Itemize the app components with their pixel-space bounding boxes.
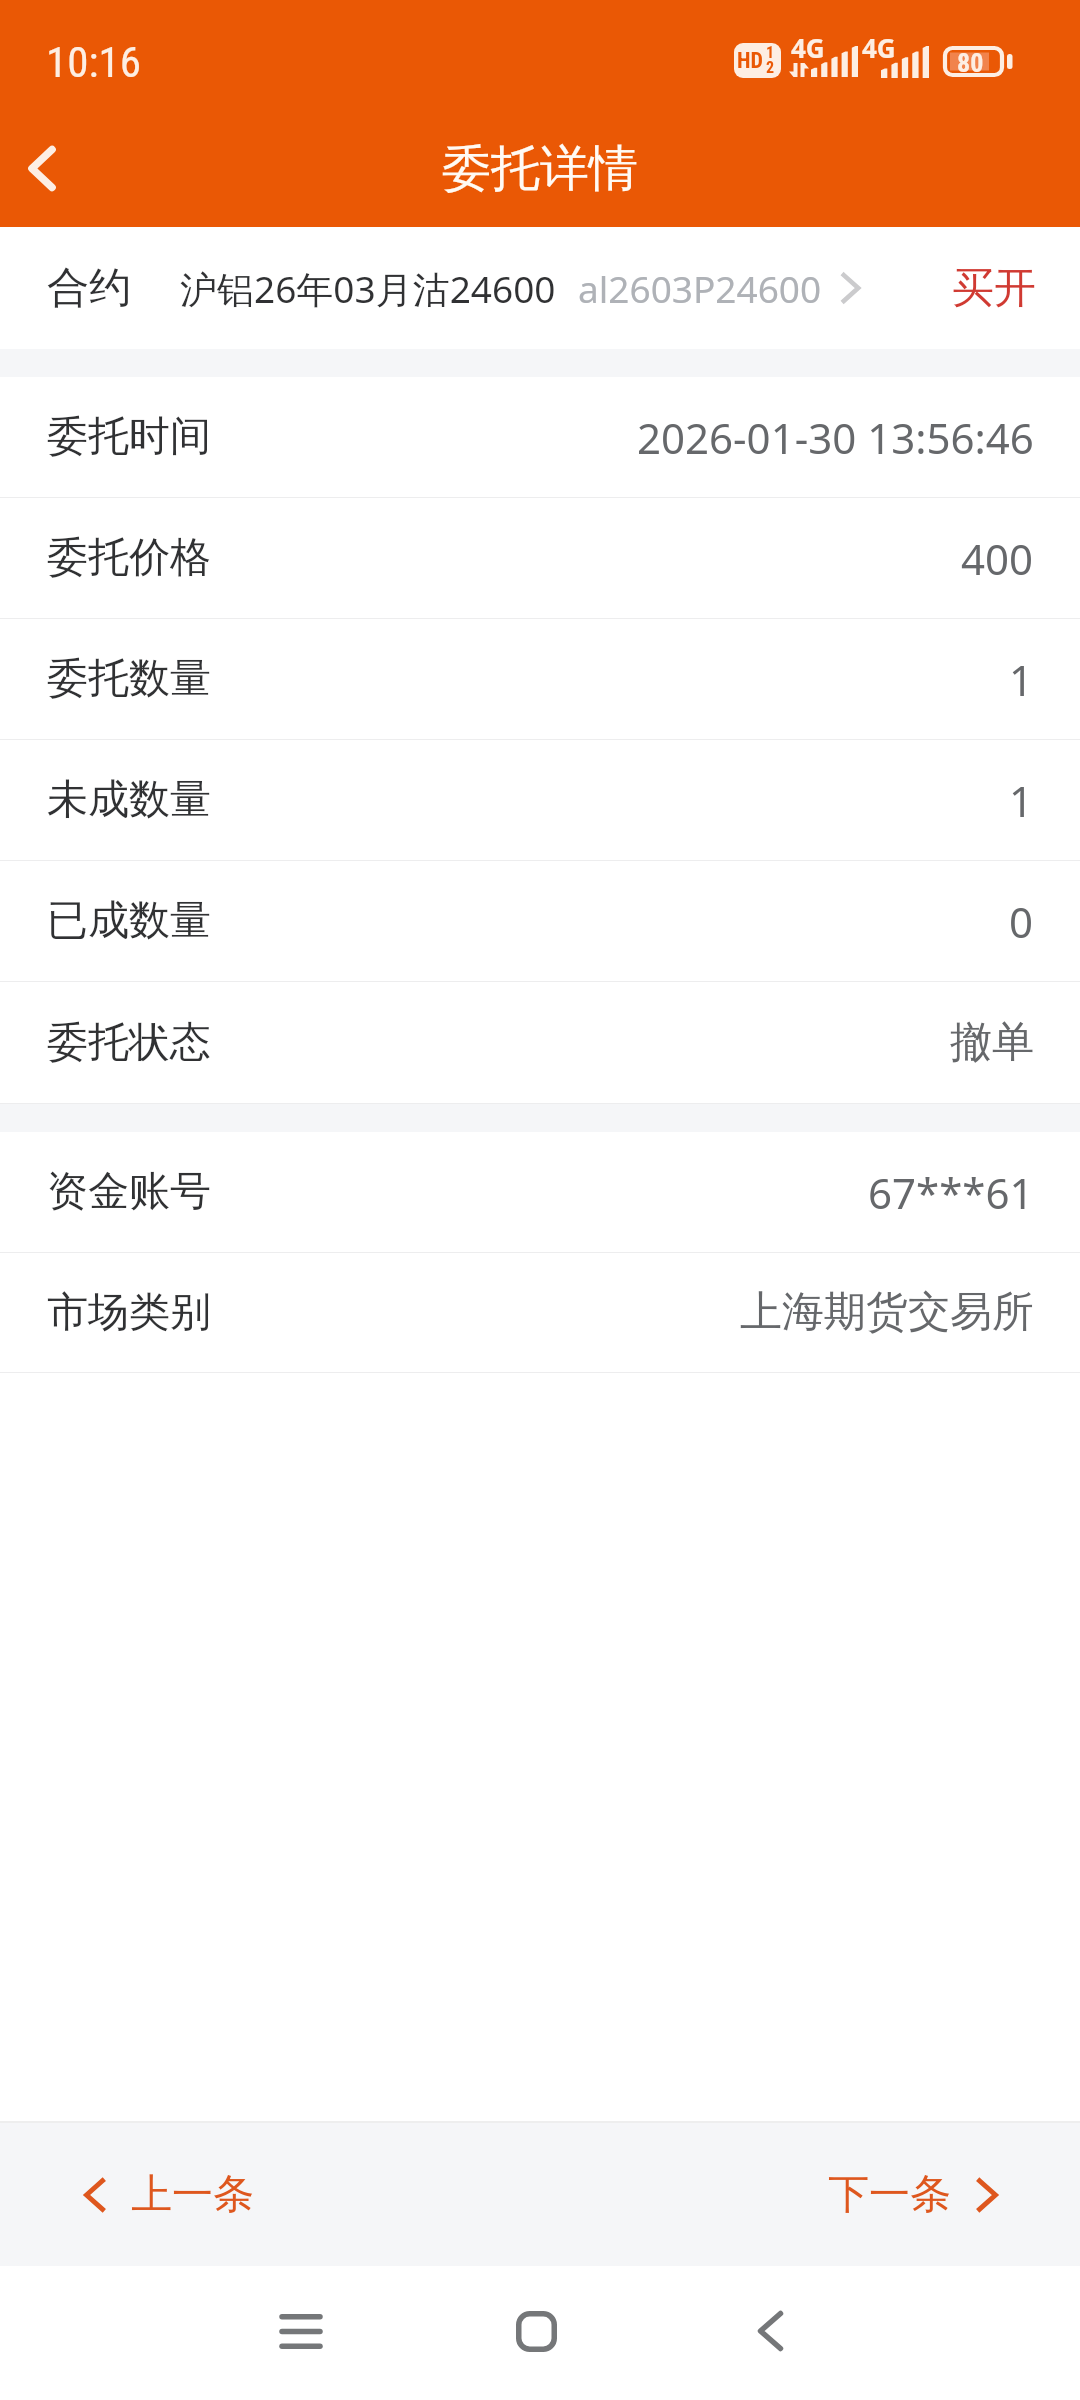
staticText: 委托详情 [442,138,638,200]
staticText: 67***61 [868,1164,1034,1221]
staticText: 市场类别 [47,1287,211,1339]
staticText: 委托时间 [47,411,211,463]
button[interactable]: Back [0,113,97,223]
staticText: 已成数量 [47,895,211,947]
button[interactable]: 委托状态 [0,982,1080,1104]
button[interactable]: 市场类别 [0,1253,1080,1373]
button[interactable]: Recent apps [251,2281,351,2381]
staticText: 资金账号 [47,1166,211,1218]
staticText: 委托状态 [47,1017,211,1069]
staticText: 4G [791,30,825,65]
staticText: al2603P24600 [578,263,822,313]
staticText: HD [737,48,763,74]
staticText: 买开 [952,262,1036,315]
button[interactable]: 未成数量 [0,740,1080,861]
button[interactable]: Home [486,2281,586,2381]
button[interactable]: 委托时间 [0,377,1080,498]
staticText: 1 [766,43,775,62]
button[interactable]: 委托价格 [0,498,1080,619]
staticText: 1 [1009,772,1034,829]
button[interactable]: 合约 [0,227,1080,349]
staticText: 未成数量 [47,774,211,826]
staticText: 4G [862,30,896,65]
staticText: 委托价格 [47,532,211,584]
button[interactable]: Back [720,2281,820,2381]
staticText: 委托数量 [47,653,211,705]
button[interactable]: 委托数量 [0,619,1080,740]
staticText: 10:16 [46,37,141,87]
staticText: 80 [957,48,984,76]
staticText: 沪铝26年03月沽24600 [180,263,556,314]
button[interactable]: 已成数量 [0,861,1080,982]
staticText: 2 [766,58,775,77]
staticText: 合约 [47,262,131,315]
staticText: 0 [1009,893,1034,950]
staticText: 上海期货交易所 [740,1286,1034,1339]
button[interactable]: 资金账号 [0,1132,1080,1253]
staticText: 撤单 [950,1016,1034,1069]
button[interactable]: 下一条 [788,2123,1080,2266]
button[interactable]: 上一条 [0,2123,294,2266]
staticText: 400 [961,530,1034,587]
staticText: 1 [1009,651,1034,708]
staticText: 上一条 [131,2169,254,2221]
staticText: 下一条 [828,2169,951,2221]
staticText: 2026-01-30 13:56:46 [637,409,1034,466]
